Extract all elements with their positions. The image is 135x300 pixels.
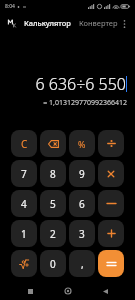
button[interactable]: More options [119,17,130,30]
button[interactable]: Divide [98,130,124,157]
button[interactable]: , [69,250,95,277]
staticText: 6 [79,197,85,211]
button[interactable]: Калькулятор [23,16,72,30]
staticText: % [78,138,86,150]
staticText: 2 [50,227,56,241]
staticText: 8 [50,167,56,181]
staticText: = 1,013129770992366412 [43,98,127,108]
button[interactable]: Recents [22,283,38,299]
button[interactable]: Конвертер [78,16,119,30]
staticText: 0 [50,257,56,271]
button[interactable]: 3 [69,220,95,247]
button[interactable]: 0 [40,250,66,277]
button[interactable]: Scientific mode [11,250,37,277]
button[interactable]: Multiply [98,160,124,187]
button[interactable]: 6 [69,190,95,217]
button[interactable]: C [11,130,37,157]
staticText: C [21,137,28,151]
staticText: 1 [21,227,27,241]
button[interactable]: Back [97,283,113,299]
button[interactable]: 5 [40,190,66,217]
button[interactable]: 1 [11,220,37,247]
staticText: 3 [79,227,85,241]
button[interactable]: 2 [40,220,66,247]
button[interactable]: % [69,130,95,157]
staticText: 9 [79,167,85,181]
button[interactable]: 9 [69,160,95,187]
button[interactable]: Minus [98,190,124,217]
button[interactable]: Home [60,283,76,299]
button[interactable]: Backspace [40,130,66,157]
button[interactable]: Plus [98,220,124,247]
staticText: Конвертер [79,18,118,28]
button[interactable]: Equals [98,250,124,277]
staticText: 6 636÷6 550 [35,73,126,95]
staticText: 5 [50,197,56,211]
staticText: , [81,257,84,271]
staticText: 7 [21,167,27,181]
button[interactable]: 4 [11,190,37,217]
staticText: 4 [21,197,27,211]
staticText: 8:04 [5,3,15,10]
button[interactable]: 7 [11,160,37,187]
button[interactable]: Unit history [5,16,19,30]
button[interactable]: 8 [40,160,66,187]
staticText: Калькулятор [24,18,71,28]
